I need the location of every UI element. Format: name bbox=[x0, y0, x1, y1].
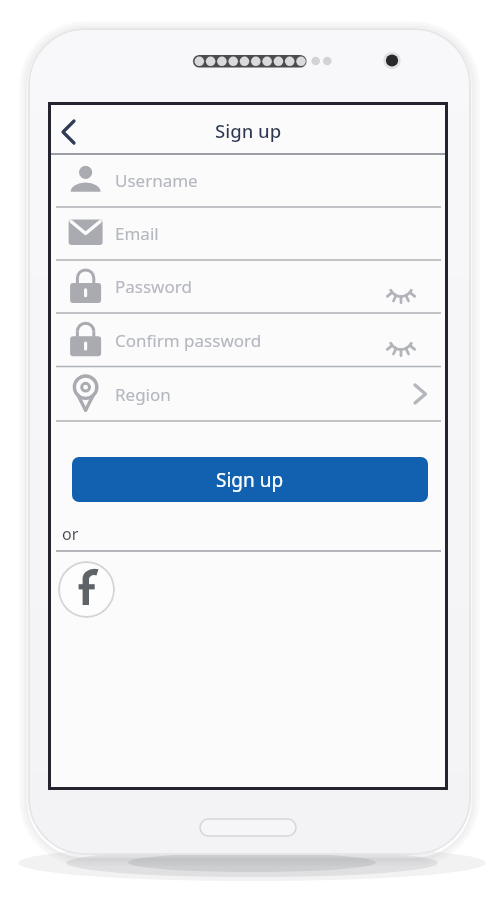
button[interactable]: Region bbox=[48, 367, 448, 422]
staticText: or bbox=[62, 523, 79, 545]
staticText: Sign up bbox=[216, 467, 284, 493]
button[interactable]: Sign up bbox=[72, 457, 428, 502]
staticText: Sign up bbox=[215, 118, 282, 143]
button[interactable]: Username bbox=[48, 154, 448, 207]
staticText: Email bbox=[115, 222, 159, 245]
button[interactable]: Confirm password bbox=[48, 313, 448, 367]
button[interactable] bbox=[48, 102, 104, 154]
staticText: Username bbox=[115, 169, 198, 192]
button[interactable]: Password bbox=[48, 260, 448, 313]
staticText: Password bbox=[115, 275, 192, 298]
staticText: Confirm password bbox=[115, 329, 262, 352]
button[interactable] bbox=[58, 561, 115, 618]
staticText: Region bbox=[115, 383, 171, 406]
button[interactable]: Email bbox=[48, 207, 448, 260]
